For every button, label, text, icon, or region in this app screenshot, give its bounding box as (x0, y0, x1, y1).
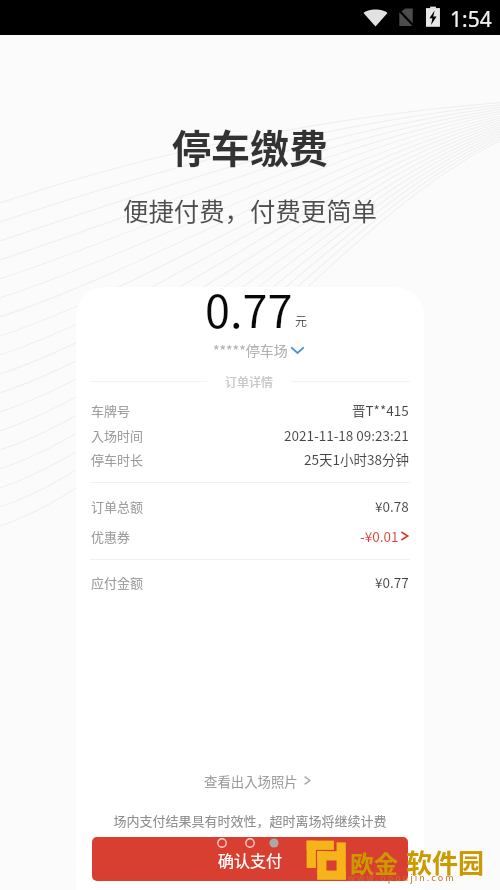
staticText: 0.77 (205, 287, 293, 341)
button[interactable]: 确认支付 (92, 837, 408, 881)
staticText: ¥0.77 (375, 572, 409, 592)
staticText: 1:54 (450, 5, 492, 34)
staticText: 车牌号 (91, 401, 131, 420)
button[interactable]: 入场时间 (91, 425, 409, 445)
staticText: 入场时间 (91, 426, 144, 445)
staticText: 晋T**415 (352, 400, 409, 420)
button[interactable]: 查看出入场照片 (83, 771, 424, 790)
staticText: 场内支付结果具有时效性，超时离场将继续计费 (76, 811, 424, 830)
button[interactable]: 停车时长 (91, 449, 409, 469)
staticText: 便捷付费，付费更简单 (0, 192, 500, 229)
staticText: w w w . o p o u j i n . c o m (348, 871, 454, 884)
staticText: 25天1小时38分钟 (304, 449, 409, 469)
button[interactable]: 应付金额 (91, 572, 409, 592)
staticText: 查看出入场照片 (204, 771, 298, 790)
staticText: *****停车场 (213, 340, 288, 360)
staticText: ¥0.78 (375, 496, 409, 516)
button[interactable]: 订单总额 (91, 496, 409, 516)
staticText: 确认支付 (218, 848, 283, 871)
button[interactable]: 车牌号 (91, 400, 409, 420)
staticText: 停车时长 (91, 450, 144, 469)
other: Switch parking lot (291, 347, 304, 354)
staticText: -¥0.01 (360, 526, 399, 546)
staticText: 优惠券 (91, 527, 131, 546)
staticText: 2021-11-18 09:23:21 (284, 425, 409, 445)
staticText: 应付金额 (91, 573, 144, 592)
button[interactable]: 优惠券 (91, 526, 409, 546)
staticText: 软件园 (406, 843, 485, 881)
staticText: 订单详情 (225, 373, 274, 390)
staticText: 订单总额 (91, 497, 144, 516)
staticText: 欧金 (350, 845, 398, 880)
button[interactable]: *****停车场 (84, 340, 424, 360)
staticText: 元 (295, 312, 308, 329)
staticText: 停车缴费 (0, 118, 500, 174)
